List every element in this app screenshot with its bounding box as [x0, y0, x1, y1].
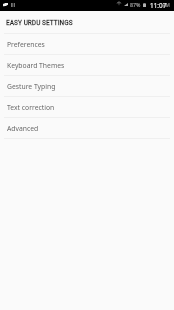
button[interactable]: Gesture Typing [0, 75, 174, 96]
other: Battery 87 percent [143, 3, 146, 7]
staticText: 87% [130, 1, 141, 8]
staticText: Advanced [7, 124, 39, 133]
other: Mobile signal [124, 3, 128, 6]
other: Keyboard active [11, 3, 15, 7]
button[interactable]: Preferences [0, 33, 174, 54]
staticText: AM [163, 2, 170, 8]
button[interactable]: Text correction [0, 96, 174, 117]
staticText: Gesture Typing [7, 82, 56, 91]
other: Wi-Fi [117, 2, 121, 5]
staticText: 11:07 [150, 1, 167, 10]
staticText: Preferences [7, 40, 45, 49]
staticText: EASY URDU SETTINGS [6, 18, 73, 27]
staticText: Keyboard Themes [7, 61, 65, 70]
other: New messages [3, 3, 8, 7]
staticText: Text correction [7, 103, 55, 112]
button[interactable]: Advanced [0, 117, 174, 138]
button[interactable]: Keyboard Themes [0, 54, 174, 75]
